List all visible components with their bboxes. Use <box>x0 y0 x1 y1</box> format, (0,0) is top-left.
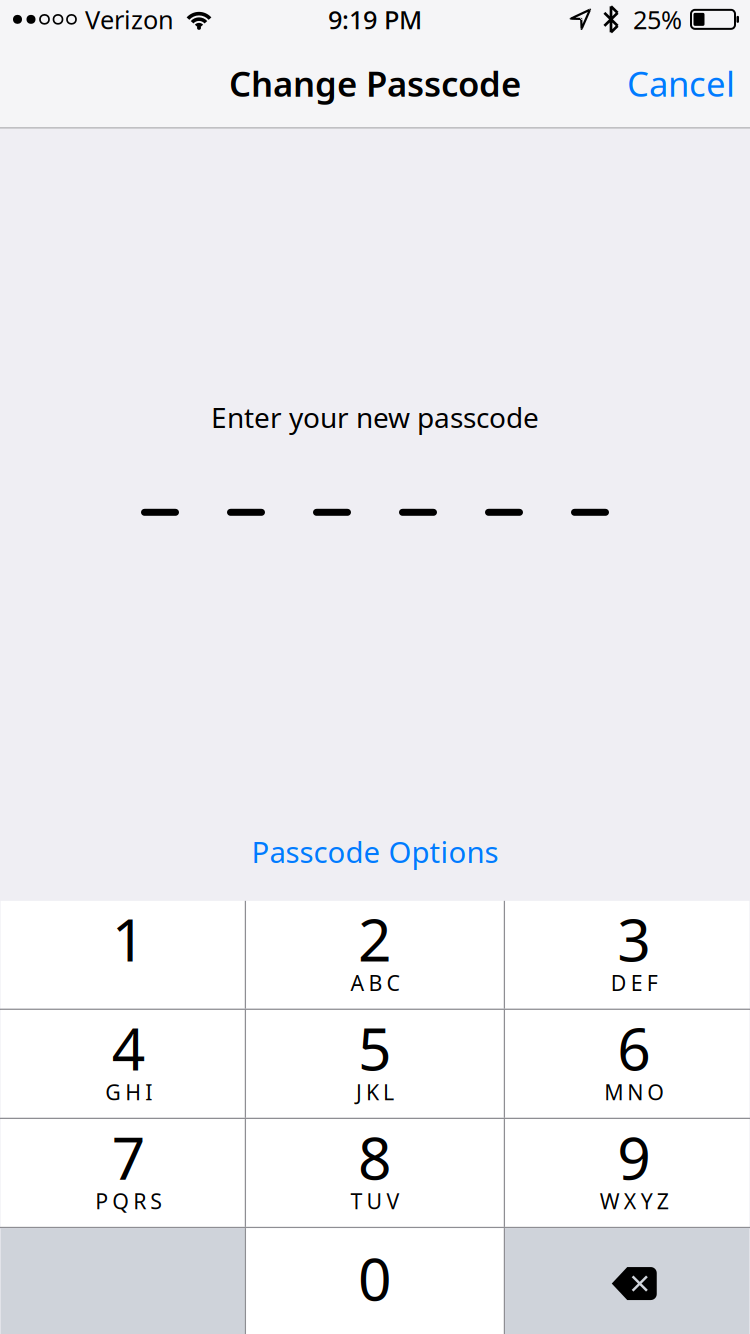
staticText: Change Passcode <box>229 60 521 106</box>
staticText: DEF <box>611 969 658 997</box>
staticText: GHI <box>105 1078 152 1106</box>
button[interactable]: 3 <box>505 901 749 1009</box>
staticText: 9 <box>617 1118 651 1196</box>
button[interactable]: 1 <box>1 901 245 1009</box>
staticText: Verizon <box>85 2 174 36</box>
staticText: MNO <box>604 1078 664 1106</box>
staticText: 25% <box>633 2 682 36</box>
button[interactable]: 8 <box>246 1119 504 1227</box>
staticText: 1 <box>112 900 146 978</box>
staticText: 0 <box>358 1239 392 1317</box>
staticText: JKL <box>356 1078 394 1106</box>
staticText: ABC <box>350 969 399 997</box>
staticText: 7 <box>112 1118 146 1196</box>
staticText: 6 <box>617 1009 651 1087</box>
button[interactable]: Delete <box>505 1228 749 1334</box>
staticText: WXYZ <box>600 1187 669 1215</box>
button[interactable]: 6 <box>505 1010 749 1118</box>
staticText: 4 <box>112 1009 146 1087</box>
button[interactable]: 9 <box>505 1119 749 1227</box>
staticText: 2 <box>358 900 392 978</box>
staticText: Passcode Options <box>251 832 498 871</box>
staticText: 8 <box>358 1118 392 1196</box>
button[interactable]: 5 <box>246 1010 504 1118</box>
button[interactable]: 2 <box>246 901 504 1009</box>
staticText: Cancel <box>627 60 735 106</box>
button[interactable]: 0 <box>246 1228 504 1334</box>
staticText: 9:19 PM <box>328 2 422 36</box>
staticText: Enter your new passcode <box>211 399 539 436</box>
button[interactable]: Cancel <box>595 39 750 127</box>
button[interactable]: 4 <box>1 1010 245 1118</box>
staticText: TUV <box>350 1187 399 1215</box>
staticText: 5 <box>358 1009 392 1087</box>
button[interactable]: 7 <box>1 1119 245 1227</box>
button[interactable]: Passcode Options <box>227 824 522 879</box>
staticText: PQRS <box>95 1187 162 1215</box>
staticText: 3 <box>617 900 651 978</box>
